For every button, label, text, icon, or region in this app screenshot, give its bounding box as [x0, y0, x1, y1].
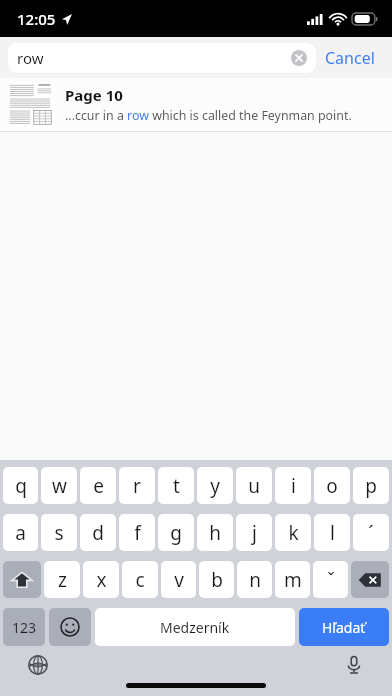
button[interactable]: b [199, 561, 234, 598]
staticText: u [248, 473, 260, 499]
staticText: r [133, 473, 141, 499]
button[interactable]: z [44, 561, 80, 598]
button[interactable]: row [8, 43, 316, 73]
button[interactable]: Page 10 [0, 78, 392, 132]
staticText: k [288, 520, 299, 546]
staticText: j [252, 520, 257, 546]
staticText: Page 10 [65, 85, 123, 105]
button[interactable]: Hľadať [299, 608, 389, 646]
staticText: Cancel [325, 47, 375, 69]
button[interactable]: r [119, 467, 155, 504]
staticText: l [330, 520, 335, 546]
staticText: Medzerník [160, 618, 230, 637]
button[interactable]: Clear text [291, 50, 307, 66]
button[interactable]: o [314, 467, 350, 504]
staticText: a [15, 520, 26, 546]
button[interactable]: d [80, 514, 116, 551]
staticText: i [291, 473, 296, 499]
staticText: p [365, 473, 377, 499]
button[interactable]: x [83, 561, 119, 598]
button[interactable]: Change keyboard language [25, 652, 51, 678]
button[interactable]: i [275, 467, 311, 504]
staticText: ˇ [327, 567, 335, 593]
button[interactable]: c [122, 561, 158, 598]
staticText: v [174, 567, 184, 593]
staticText: g [170, 520, 182, 546]
staticText: q [15, 473, 27, 499]
staticText: h [209, 520, 221, 546]
button[interactable]: j [236, 514, 272, 551]
staticText: x [96, 567, 107, 593]
staticText: ´ [368, 520, 374, 546]
staticText: ...ccur in a row which is called the Fey… [65, 107, 352, 124]
staticText: 12:05 [17, 9, 56, 29]
staticText: s [54, 520, 64, 546]
staticText: b [211, 567, 223, 593]
button[interactable]: g [158, 514, 194, 551]
staticText: t [173, 473, 180, 499]
staticText: row [17, 48, 44, 68]
button[interactable]: h [197, 514, 233, 551]
staticText: c [135, 567, 145, 593]
staticText: z [58, 567, 67, 593]
staticText: f [134, 520, 141, 546]
button[interactable]: ´ [353, 514, 389, 551]
button[interactable]: Backspace [351, 561, 389, 598]
staticText: m [284, 567, 302, 593]
button[interactable]: Cancel [316, 43, 384, 73]
button[interactable]: y [197, 467, 233, 504]
button[interactable]: v [161, 561, 196, 598]
button[interactable]: s [41, 514, 77, 551]
staticText: w [52, 473, 67, 499]
button[interactable]: a [3, 514, 38, 551]
button[interactable]: n [237, 561, 272, 598]
button[interactable]: u [236, 467, 272, 504]
button[interactable]: f [119, 514, 155, 551]
button[interactable]: m [275, 561, 310, 598]
staticText: Hľadať [322, 618, 366, 637]
button[interactable]: Medzerník [95, 608, 295, 646]
button[interactable]: q [3, 467, 38, 504]
staticText: y [210, 473, 220, 499]
button[interactable]: p [353, 467, 389, 504]
staticText: e [93, 473, 104, 499]
button[interactable]: e [80, 467, 116, 504]
button[interactable]: l [314, 514, 350, 551]
staticText: o [326, 473, 338, 499]
button[interactable]: t [158, 467, 194, 504]
staticText: d [92, 520, 104, 546]
button[interactable]: Shift [3, 561, 41, 598]
button[interactable]: Dictate [341, 652, 367, 678]
button[interactable]: k [275, 514, 311, 551]
button[interactable]: Emoji [49, 608, 91, 646]
staticText: 123 [12, 618, 37, 637]
button[interactable]: w [41, 467, 77, 504]
button[interactable]: 123 [3, 608, 45, 646]
button[interactable]: ˇ [313, 561, 348, 598]
staticText: n [249, 567, 261, 593]
